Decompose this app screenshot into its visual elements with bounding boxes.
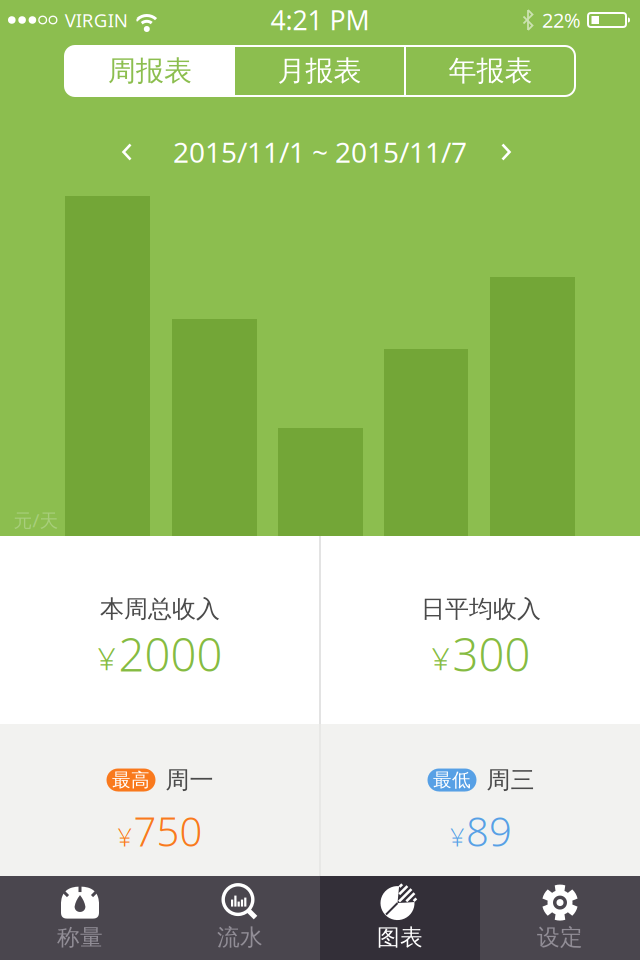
staticText: VIRGIN <box>65 8 128 32</box>
staticText: 周三 <box>486 765 534 795</box>
staticText: 流水 <box>217 924 263 951</box>
staticText: 设定 <box>537 924 583 951</box>
staticText: 年报表 <box>448 54 532 88</box>
button[interactable]: 周报表 <box>65 46 235 96</box>
button[interactable]: 月报表 <box>235 46 404 96</box>
staticText: 周一 <box>165 765 213 795</box>
staticText: 最低 <box>433 768 471 791</box>
staticText: ¥ <box>450 820 464 853</box>
button[interactable] <box>499 141 512 162</box>
staticText: 月报表 <box>277 54 361 88</box>
staticText: 300 <box>452 624 530 684</box>
staticText: ¥ <box>97 637 115 679</box>
staticText: 元/天 <box>13 508 58 532</box>
staticText: 日平均收入 <box>421 594 541 624</box>
button[interactable]: 最高 <box>0 724 319 876</box>
button[interactable]: 图表 <box>320 876 480 960</box>
button[interactable]: 最低 <box>321 724 640 876</box>
button[interactable]: 日平均收入 <box>321 536 640 724</box>
button[interactable] <box>120 141 133 162</box>
button[interactable]: 年报表 <box>406 46 575 96</box>
staticText: 称量 <box>57 924 103 951</box>
staticText: 4:21 PM <box>270 2 369 38</box>
staticText: 750 <box>133 804 202 857</box>
staticText: 本周总收入 <box>100 594 220 624</box>
staticText: ¥ <box>117 820 131 853</box>
staticText: ¥ <box>431 637 449 679</box>
staticText: 22% <box>542 7 581 33</box>
staticText: 2000 <box>118 624 222 684</box>
staticText: 89 <box>466 804 512 857</box>
button[interactable]: 本周总收入 <box>0 536 319 724</box>
button[interactable]: 设定 <box>480 876 640 960</box>
button[interactable]: 称量 <box>0 876 160 960</box>
staticText: 最高 <box>112 768 150 791</box>
staticText: 图表 <box>377 924 423 951</box>
staticText: 2015/11/1 ~ 2015/11/7 <box>173 133 467 171</box>
staticText: 周报表 <box>108 54 192 88</box>
button[interactable]: 流水 <box>160 876 320 960</box>
